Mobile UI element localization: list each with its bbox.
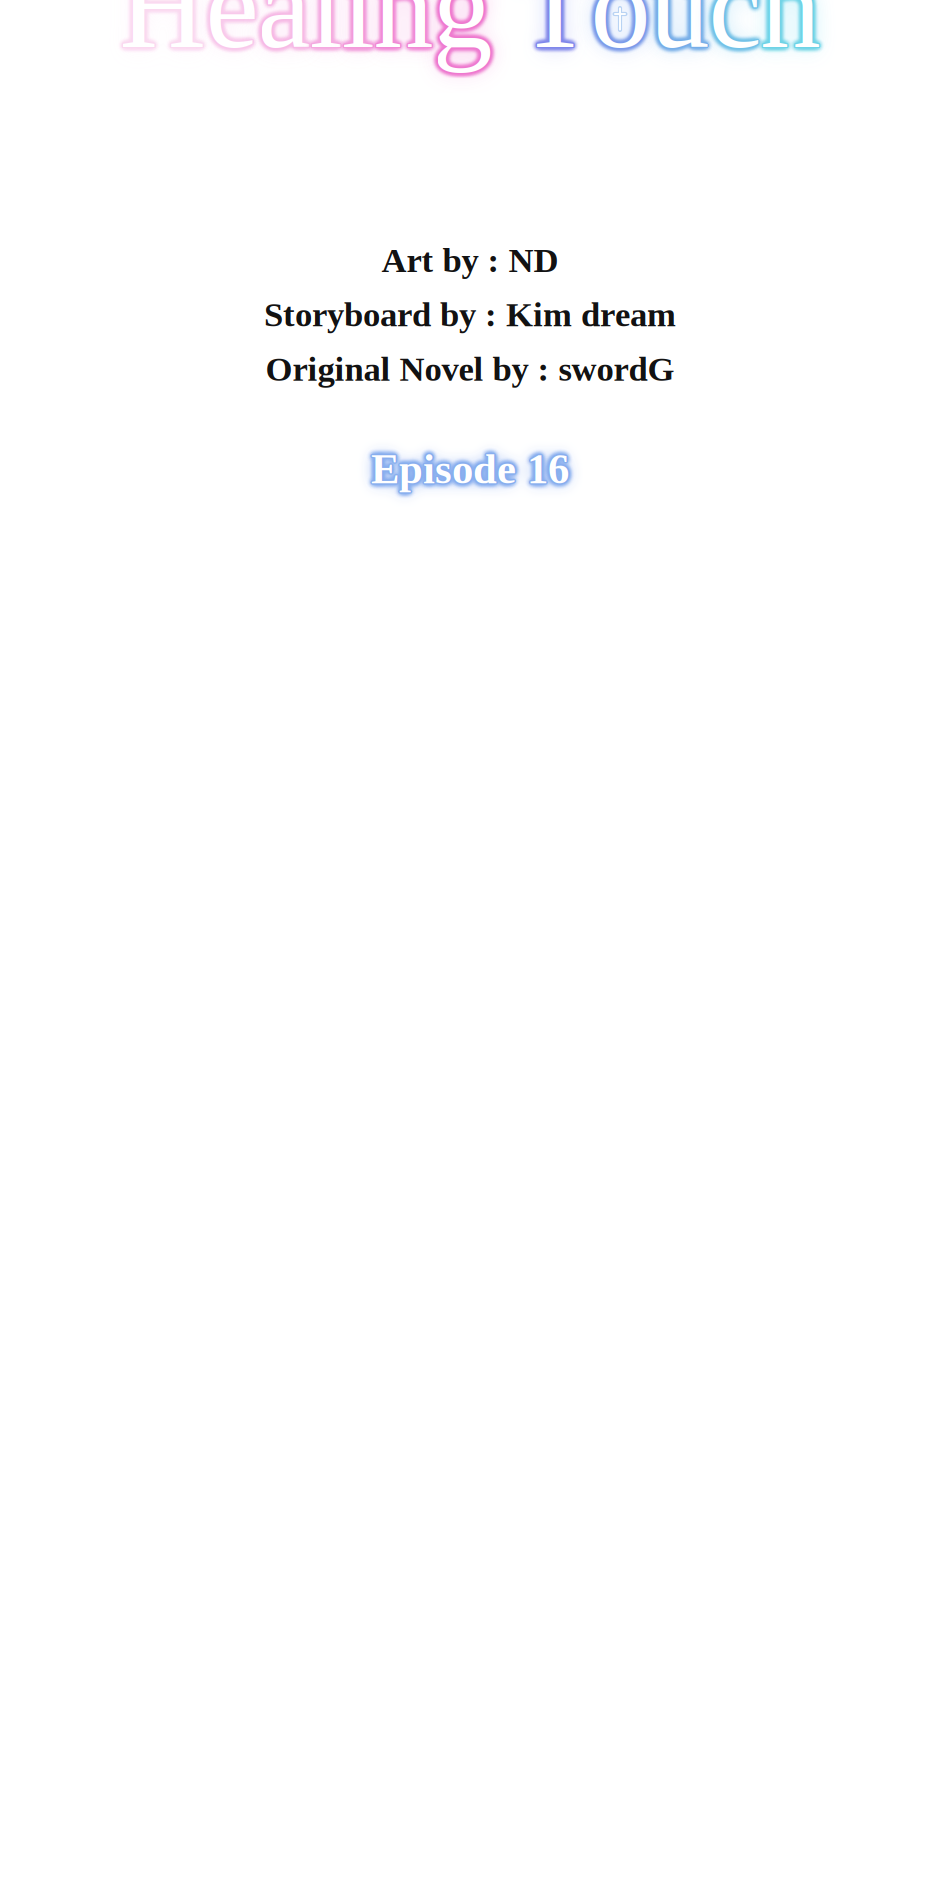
staticText: u xyxy=(651,0,711,73)
staticText: l xyxy=(309,0,342,72)
staticText: l xyxy=(308,0,341,73)
staticText: i xyxy=(341,0,374,74)
staticText: c xyxy=(707,0,760,73)
staticText: h xyxy=(760,0,820,72)
staticText: g xyxy=(432,0,492,73)
staticText: a xyxy=(257,0,310,73)
staticText: Original Novel by : swordG xyxy=(265,350,674,388)
staticText: i xyxy=(343,0,376,73)
staticText: Episode 16 xyxy=(371,445,569,492)
staticText: l xyxy=(309,0,342,72)
staticText: u xyxy=(649,0,709,73)
staticText: e xyxy=(206,0,259,72)
staticText: T xyxy=(518,0,591,74)
staticText: e xyxy=(206,0,259,74)
staticText: c xyxy=(709,0,762,72)
staticText: Storyboard by : Kim dream xyxy=(264,295,676,334)
staticText: H xyxy=(121,0,208,73)
staticText: H xyxy=(119,0,206,73)
staticText: h xyxy=(760,0,820,74)
staticText: g xyxy=(432,0,492,72)
staticText: u xyxy=(650,0,710,72)
staticText: a xyxy=(257,0,310,73)
staticText: i xyxy=(342,0,375,72)
staticText: u xyxy=(648,0,708,74)
staticText: e xyxy=(204,0,257,73)
staticText: o xyxy=(589,0,649,72)
staticText: l xyxy=(309,0,342,74)
staticText: g xyxy=(434,0,494,73)
staticText: o xyxy=(592,0,652,73)
staticText: n xyxy=(374,0,434,74)
staticText: c xyxy=(708,0,761,73)
staticText: o xyxy=(589,0,649,74)
staticText: n xyxy=(374,0,434,72)
staticText: i xyxy=(341,0,374,73)
staticText: H xyxy=(120,0,207,72)
staticText: h xyxy=(761,0,821,72)
staticText: l xyxy=(309,0,342,74)
staticText: i xyxy=(342,0,375,74)
staticText: n xyxy=(372,0,432,73)
staticText: a xyxy=(257,0,310,74)
staticText: l xyxy=(310,0,343,74)
staticText: u xyxy=(650,0,710,74)
staticText: g xyxy=(433,0,493,74)
staticText: H xyxy=(119,0,206,73)
staticText: n xyxy=(373,0,433,72)
staticText: T xyxy=(519,0,592,74)
staticText: Episode 16 xyxy=(371,447,569,494)
staticText: Episode 16 xyxy=(370,444,568,491)
staticText: Episode 16 xyxy=(372,445,570,492)
staticText: e xyxy=(205,0,258,72)
staticText: c xyxy=(708,0,761,72)
staticText: T xyxy=(517,0,590,73)
button[interactable]: Healing Touch, Episode 16 xyxy=(0,0,940,1880)
staticText: l xyxy=(309,0,342,73)
staticText: e xyxy=(207,0,260,73)
staticText: T xyxy=(518,0,591,73)
staticText: e xyxy=(205,0,258,74)
staticText: Art by : ND xyxy=(381,241,558,279)
staticText: h xyxy=(759,0,819,72)
staticText: i xyxy=(341,0,374,74)
staticText: o xyxy=(590,0,650,73)
staticText: g xyxy=(433,0,493,72)
staticText: u xyxy=(649,0,709,73)
staticText: T xyxy=(520,0,593,73)
staticText: i xyxy=(340,0,373,73)
staticText: h xyxy=(762,0,822,73)
staticText: T xyxy=(517,0,590,72)
staticText: a xyxy=(257,0,310,72)
staticText: h xyxy=(760,0,820,73)
staticText: u xyxy=(649,0,709,74)
staticText: h xyxy=(759,0,819,74)
staticText: c xyxy=(707,0,760,74)
staticText: e xyxy=(205,0,258,74)
staticText: n xyxy=(373,0,433,74)
staticText: o xyxy=(591,0,651,74)
staticText: g xyxy=(431,0,491,73)
staticText: Episode 16 xyxy=(372,444,570,491)
staticText: e xyxy=(205,0,258,73)
staticText: c xyxy=(708,0,761,73)
staticText: g xyxy=(432,0,492,72)
staticText: c xyxy=(707,0,760,72)
staticText: u xyxy=(648,0,708,73)
staticText: H xyxy=(118,0,205,73)
staticText: u xyxy=(648,0,708,72)
staticText: l xyxy=(310,0,343,72)
staticText: i xyxy=(341,0,374,72)
staticText: T xyxy=(517,0,590,74)
staticText: g xyxy=(432,0,492,74)
staticText: g xyxy=(432,0,492,74)
staticText: o xyxy=(590,0,650,72)
staticText: i xyxy=(341,0,374,72)
staticText: g xyxy=(432,0,492,73)
staticText: o xyxy=(589,0,649,73)
staticText: o xyxy=(590,0,650,73)
staticText: h xyxy=(761,0,821,74)
staticText: n xyxy=(375,0,435,73)
staticText: n xyxy=(373,0,433,73)
staticText: Episode 16 xyxy=(371,444,569,491)
